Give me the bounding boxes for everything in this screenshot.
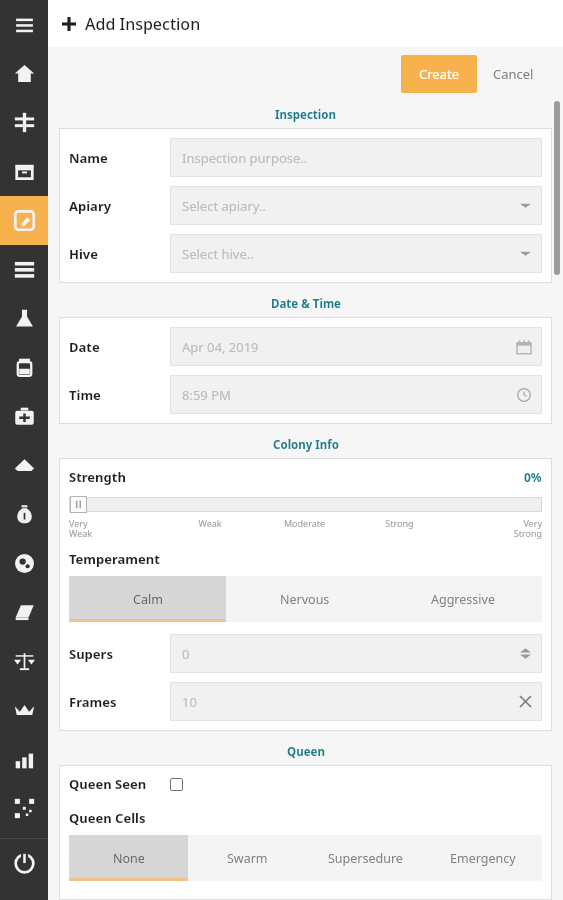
staticText: Aggressive	[431, 591, 495, 608]
staticText: Add Inspection	[85, 13, 201, 35]
button[interactable]: Create	[401, 55, 477, 93]
staticText: Hive	[69, 245, 99, 263]
button[interactable]: Queen Seen	[69, 775, 542, 793]
staticText: Calm	[133, 591, 163, 608]
button[interactable]: Cancel	[477, 55, 550, 93]
button[interactable]: Compliance	[0, 637, 48, 686]
button[interactable]: Finance	[0, 490, 48, 539]
button[interactable]: Apiaries	[0, 98, 48, 147]
button[interactable]: Equipment	[0, 392, 48, 441]
staticText: Select hive..	[182, 245, 254, 263]
button[interactable]: Inspection purpose..	[170, 138, 542, 177]
staticText: Inspection	[275, 107, 336, 123]
button[interactable]: Weather	[0, 539, 48, 588]
staticText: Colony Info	[273, 437, 339, 453]
button[interactable]: Harvest	[0, 343, 48, 392]
button[interactable]: Queens	[0, 686, 48, 735]
staticText: 10	[182, 693, 197, 711]
button[interactable]: Records	[0, 245, 48, 294]
button[interactable]: Inspections	[0, 196, 48, 245]
staticText: Supers	[69, 645, 113, 663]
button[interactable]: Home	[0, 49, 48, 98]
button[interactable]: Locations	[0, 441, 48, 490]
staticText: 0	[182, 645, 190, 663]
staticText: Cancel	[493, 65, 534, 83]
staticText: Swarm	[227, 850, 268, 867]
staticText: Queen Seen	[69, 775, 147, 793]
staticText: Emergency	[450, 850, 516, 867]
staticText: Temperament	[69, 550, 160, 568]
button[interactable]: Add Inspection	[62, 13, 201, 35]
staticText: Queen Cells	[69, 809, 146, 827]
button[interactable]: Nervous	[226, 576, 384, 622]
staticText: Select apiary..	[182, 197, 266, 215]
staticText: Queen	[287, 744, 325, 760]
button[interactable]: Hives	[0, 147, 48, 196]
staticText: Nervous	[280, 591, 330, 608]
staticText: Weak	[163, 517, 257, 529]
button[interactable]: Select hive..	[170, 234, 542, 273]
button[interactable]: 0	[170, 634, 542, 673]
staticText: 8:59 PM	[182, 386, 231, 404]
button[interactable]: Treatments	[0, 294, 48, 343]
staticText: Name	[69, 149, 108, 167]
button[interactable]: Labels	[0, 784, 48, 833]
button[interactable]: Strength slider	[69, 496, 542, 513]
staticText: Very Strong	[447, 517, 542, 539]
button[interactable]: Journal	[0, 588, 48, 637]
staticText: Moderate	[257, 517, 352, 529]
staticText: Date & Time	[271, 296, 341, 312]
button[interactable]: 10	[170, 682, 542, 721]
button[interactable]: Select apiary..	[170, 186, 542, 225]
staticText: Apiary	[69, 197, 112, 215]
button[interactable]: Log out	[0, 839, 48, 888]
button[interactable]: Aggressive	[384, 576, 542, 622]
button[interactable]: Swarm	[188, 835, 306, 881]
staticText: Inspection purpose..	[182, 149, 308, 167]
button[interactable]: None	[69, 835, 188, 881]
staticText: None	[113, 850, 145, 867]
staticText: Strong	[352, 517, 447, 529]
button[interactable]: Reports	[0, 735, 48, 784]
staticText: 0%	[524, 469, 542, 485]
button[interactable]: Menu	[0, 0, 48, 49]
staticText: Frames	[69, 693, 117, 711]
staticText: Date	[69, 338, 100, 356]
staticText: Time	[69, 386, 101, 404]
staticText: Very Weak	[69, 517, 163, 539]
staticText: Apr 04, 2019	[182, 338, 259, 356]
button[interactable]: Emergency	[424, 835, 542, 881]
button[interactable]: 8:59 PM	[170, 375, 542, 414]
button[interactable]: Supersedure	[306, 835, 424, 881]
button[interactable]: Calm	[69, 576, 226, 622]
staticText: Strength	[69, 468, 126, 486]
staticText: Create	[419, 65, 459, 83]
staticText: Supersedure	[328, 850, 403, 867]
button[interactable]: Apr 04, 2019	[170, 327, 542, 366]
